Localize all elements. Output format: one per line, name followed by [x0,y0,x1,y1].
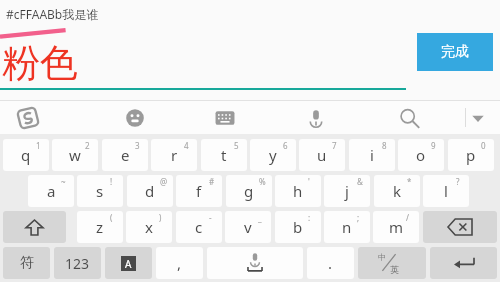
staticText: 5 [234,140,239,151]
button[interactable]: p [448,139,494,171]
button[interactable]: b [275,211,321,243]
button[interactable]: u [299,139,345,171]
button[interactable]: e [102,139,148,171]
staticText: k [393,181,402,201]
staticText: i [370,145,374,165]
staticText: _ [258,212,262,223]
button[interactable]: z [77,211,123,243]
staticText: c [195,217,203,237]
staticText: ' [308,176,310,187]
staticText: * [407,176,412,187]
staticText: h [293,181,303,201]
button[interactable]: i [349,139,395,171]
staticText: 123 [65,254,90,273]
staticText: 8 [382,140,387,151]
staticText: , [177,253,182,273]
staticText: n [342,217,352,237]
staticText: ! [110,176,113,187]
staticText: r [171,145,178,165]
button[interactable]: t [201,139,247,171]
button[interactable]: k [374,175,420,207]
staticText: t [221,145,227,165]
button[interactable]: . [307,247,354,279]
staticText: % [259,176,266,187]
button[interactable]: j [324,175,370,207]
button[interactable]: Backspace [423,211,497,243]
staticText: g [244,181,254,201]
staticText: e [121,145,130,165]
button[interactable]: m [373,211,419,243]
staticText: j [345,181,349,201]
button[interactable]: r [151,139,197,171]
staticText: p [466,145,476,165]
staticText: f [196,181,202,201]
staticText: & [357,176,363,187]
staticText: o [416,145,426,165]
button[interactable]: Chinese English toggle [358,247,426,279]
button[interactable]: 123 [54,247,101,279]
staticText: # [209,176,215,187]
staticText: l [444,181,448,201]
staticText: 1 [36,140,41,151]
staticText: ; [357,212,360,223]
button[interactable]: 完成 [417,33,493,71]
staticText: : [308,212,311,223]
staticText: 9 [431,140,436,151]
staticText: d [145,181,155,201]
button[interactable]: Hide keyboard [462,101,494,134]
button[interactable]: , [156,247,203,279]
button[interactable]: Enter [430,247,497,279]
button[interactable]: Shift [3,211,66,243]
staticText: A [125,257,132,271]
staticText: w [69,145,81,165]
staticText: b [293,217,303,237]
staticText: v [244,217,252,237]
button[interactable]: c [176,211,222,243]
staticText: 粉色 [2,39,78,87]
staticText: x [145,217,153,237]
staticText: 符 [20,254,34,272]
button[interactable]: q [3,139,49,171]
button[interactable]: y [250,139,296,171]
staticText: 6 [283,140,288,151]
button[interactable]: n [324,211,370,243]
staticText: 7 [332,140,337,151]
button[interactable]: Space [207,247,303,279]
staticText: ~ [61,176,66,187]
button[interactable]: Keyboard layout [209,101,241,134]
staticText: 2 [85,140,90,151]
staticText: ( [110,212,113,223]
button[interactable]: g [226,175,272,207]
button[interactable]: o [398,139,444,171]
button[interactable]: a [28,175,74,207]
button[interactable]: h [275,175,321,207]
staticText: m [389,217,404,237]
button[interactable]: v [225,211,271,243]
staticText: a [47,181,56,201]
button[interactable]: d [127,175,173,207]
staticText: ? [456,176,460,187]
button[interactable]: l [423,175,469,207]
button[interactable]: Emoji [119,101,151,134]
staticText: q [21,145,31,165]
button[interactable]: Switch language [105,247,152,279]
staticText: y [269,145,277,165]
staticText: 完成 [441,43,469,61]
button[interactable]: Search [393,101,425,134]
button[interactable]: x [126,211,172,243]
button[interactable]: Sogou input [12,101,44,134]
staticText: 3 [135,140,140,151]
staticText: ) [159,212,162,223]
staticText: 中 [378,252,386,262]
staticText: s [96,181,104,201]
staticText: #cFFAABb我是谁 [6,6,99,22]
button[interactable]: 符 [3,247,50,279]
button[interactable]: f [176,175,222,207]
button[interactable]: w [52,139,98,171]
staticText: 英 [390,264,399,275]
staticText: / [406,212,409,223]
staticText: . [328,253,333,273]
button[interactable]: Voice input [300,101,332,134]
button[interactable]: s [77,175,123,207]
staticText: @ [160,176,168,187]
